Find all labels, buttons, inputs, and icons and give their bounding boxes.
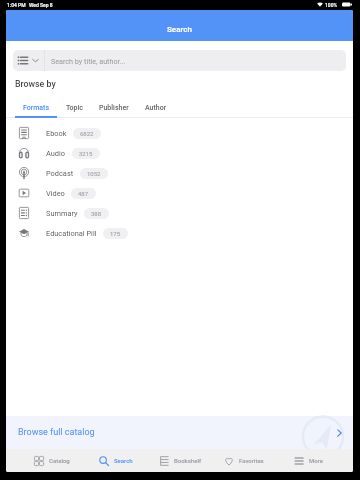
staticText: 487 — [78, 190, 89, 197]
button[interactable]: Audio — [6, 143, 353, 163]
button[interactable]: Summary — [6, 203, 353, 223]
staticText: 6822 — [80, 130, 94, 137]
button[interactable]: Search — [84, 449, 148, 472]
button[interactable]: Favorites — [212, 449, 276, 472]
button[interactable]: Educational Pill — [6, 223, 353, 243]
staticText: Formats — [23, 104, 50, 112]
staticText: Wed Sep 8 — [29, 2, 53, 8]
button[interactable]: Search — [6, 10, 353, 41]
button[interactable]: Author — [137, 100, 175, 118]
button[interactable]: Formats — [15, 100, 58, 118]
button[interactable]: Filter by list — [13, 50, 44, 71]
staticText: Podcast — [46, 169, 74, 178]
button[interactable]: Ebook — [6, 123, 353, 143]
staticText: Catalog — [49, 457, 70, 464]
button[interactable]: Search by title, author... — [45, 50, 346, 71]
other: Open full catalog — [337, 429, 342, 437]
staticText: 175 — [110, 230, 121, 237]
staticText: Summary — [46, 209, 78, 218]
staticText: Publisher — [99, 104, 129, 112]
button[interactable]: Podcast — [6, 163, 353, 183]
staticText: Browse by — [15, 79, 56, 89]
button[interactable]: Video — [6, 183, 353, 203]
staticText: Search by title, author... — [51, 57, 126, 65]
staticText: Video — [46, 189, 65, 198]
staticText: 100% — [325, 2, 338, 8]
button[interactable]: Publisher — [91, 100, 137, 118]
staticText: Search — [114, 457, 133, 464]
button[interactable]: Catalog — [20, 449, 84, 472]
staticText: More — [309, 457, 323, 464]
staticText: 388 — [91, 210, 102, 217]
staticText: Topic — [66, 104, 83, 112]
staticText: 1052 — [87, 170, 101, 177]
staticText: Audio — [46, 149, 66, 158]
staticText: Author — [145, 104, 167, 112]
button[interactable]: Browse full catalog — [6, 416, 353, 449]
staticText: Educational Pill — [46, 229, 97, 238]
staticText: Ebook — [46, 129, 67, 138]
staticText: Bookshelf — [174, 457, 202, 464]
staticText: Search — [167, 25, 192, 34]
staticText: 1:04 PM — [7, 2, 26, 8]
staticText: 3215 — [79, 150, 93, 157]
button[interactable]: Topic — [58, 100, 91, 118]
staticText: Browse full catalog — [18, 427, 95, 438]
button[interactable]: Bookshelf — [148, 449, 212, 472]
staticText: Favorites — [239, 457, 264, 464]
button[interactable]: More — [276, 449, 340, 472]
